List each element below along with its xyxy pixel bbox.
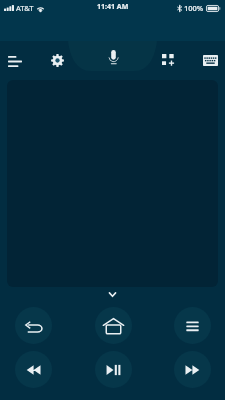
button[interactable]: Home <box>95 307 132 344</box>
button[interactable]: Play pause <box>95 351 132 388</box>
button[interactable]: Fast forward <box>174 351 211 388</box>
staticText: 11:41 AM <box>97 2 129 12</box>
button[interactable]: Expand <box>101 285 124 303</box>
staticText: 100% <box>184 3 204 13</box>
button[interactable]: Menu <box>0 44 32 78</box>
button[interactable]: Keyboard <box>193 43 225 77</box>
button[interactable]: Apps <box>152 43 186 77</box>
button[interactable]: Back <box>15 307 52 344</box>
button[interactable]: Voice search <box>96 40 130 74</box>
button[interactable]: Menu <box>174 307 211 344</box>
button[interactable]: Rewind <box>15 351 52 388</box>
button[interactable]: Settings <box>40 43 74 77</box>
staticText: AT&T <box>16 3 34 13</box>
